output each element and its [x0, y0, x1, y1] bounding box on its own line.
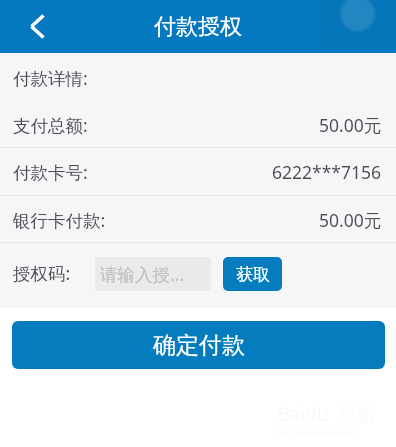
- staticText: 支付总额:: [13, 113, 88, 137]
- staticText: 付款详情:: [13, 66, 88, 90]
- staticText: 获取: [236, 264, 270, 285]
- staticText: 50.00元: [319, 208, 382, 232]
- staticText: 请输入授...: [100, 262, 185, 286]
- staticText: 50.00元: [319, 113, 382, 137]
- staticText: 付款授权: [154, 13, 242, 41]
- staticText: 授权码:: [13, 261, 71, 285]
- staticText: 确定付款: [153, 331, 245, 360]
- button[interactable]: 请输入授...: [95, 257, 211, 291]
- button[interactable]: 确定付款: [12, 321, 385, 369]
- button[interactable]: 获取: [223, 257, 282, 291]
- staticText: 付款卡号:: [13, 160, 88, 184]
- staticText: 6222***7156: [272, 160, 382, 184]
- button[interactable]: Back: [0, 0, 74, 53]
- staticText: 银行卡付款:: [13, 208, 106, 232]
